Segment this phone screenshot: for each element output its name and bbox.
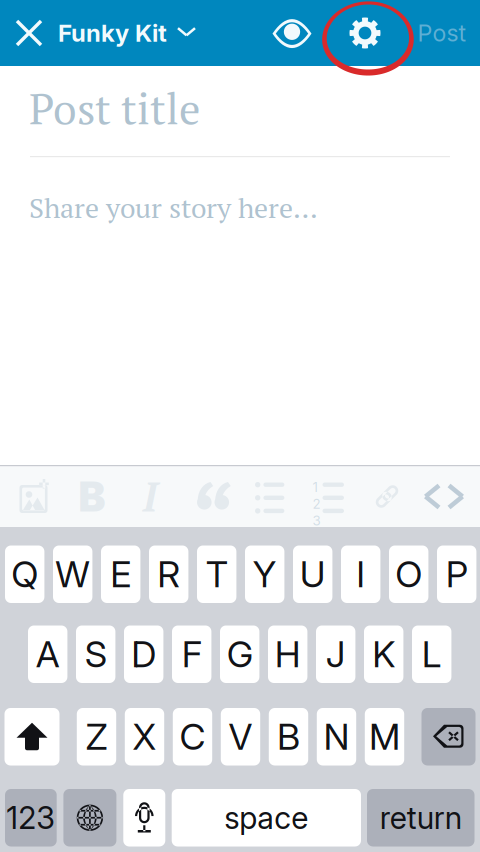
button[interactable]: Preview [266, 0, 318, 66]
staticText: Share your story here… [29, 189, 318, 226]
button[interactable]: V [221, 708, 260, 765]
button[interactable]: Settings [337, 0, 393, 66]
button[interactable]: Dictate [123, 789, 165, 846]
button[interactable]: Italic [122, 466, 178, 527]
staticText: H [275, 632, 301, 676]
button[interactable]: E [101, 545, 140, 603]
staticText: G [227, 632, 253, 676]
staticText: space [224, 799, 308, 836]
staticText: 2 [312, 496, 320, 512]
button[interactable]: Delete [421, 708, 475, 765]
button[interactable]: F [172, 625, 211, 683]
button[interactable]: N [317, 708, 356, 765]
button[interactable]: J [316, 625, 355, 683]
staticText: F [182, 632, 202, 676]
button[interactable]: 123 [5, 789, 57, 846]
button[interactable]: Bold [64, 466, 120, 527]
button[interactable]: Next keyboard [63, 789, 116, 846]
staticText: X [132, 715, 156, 759]
staticText: Post [417, 19, 466, 47]
staticText: 1 [312, 479, 317, 495]
staticText: K [372, 632, 395, 676]
staticText: M [369, 715, 400, 759]
staticText: Y [253, 552, 277, 596]
staticText: T [206, 552, 228, 596]
button[interactable]: Shift [4, 708, 59, 765]
staticText: Q [11, 552, 38, 596]
button[interactable]: Quote [186, 466, 242, 527]
staticText: 123 [6, 799, 55, 836]
staticText: I [142, 470, 157, 523]
button[interactable]: Q [5, 545, 44, 603]
button[interactable]: C [173, 708, 212, 765]
button[interactable]: A [28, 625, 67, 683]
staticText: B [277, 715, 300, 759]
button[interactable]: space [172, 789, 361, 846]
button[interactable]: R [149, 545, 188, 603]
button[interactable]: I [341, 545, 380, 603]
button[interactable]: O [389, 545, 428, 603]
button[interactable]: B [269, 708, 308, 765]
button[interactable]: D [124, 625, 163, 683]
button[interactable]: Code [416, 466, 472, 527]
button[interactable]: Close [5, 0, 53, 66]
button[interactable]: Funky Kit [58, 0, 195, 66]
button[interactable]: X [125, 708, 164, 765]
button[interactable]: Link [359, 466, 415, 527]
button[interactable]: return [367, 789, 474, 846]
button[interactable]: S [76, 625, 115, 683]
staticText: Z [85, 715, 107, 759]
staticText: J [326, 632, 346, 676]
button[interactable]: M [365, 708, 404, 765]
button[interactable]: Y [245, 545, 284, 603]
staticText: S [85, 632, 107, 676]
staticText: 3 [312, 512, 320, 529]
button[interactable]: Post [408, 0, 476, 66]
button[interactable]: T [197, 545, 236, 603]
button[interactable]: L [412, 625, 451, 683]
button[interactable]: Bullet list [242, 466, 298, 527]
button[interactable]: K [364, 625, 403, 683]
staticText: V [228, 715, 252, 759]
staticText: A [36, 632, 60, 676]
staticText: Funky Kit [58, 18, 167, 47]
staticText: I [356, 552, 365, 596]
staticText: U [300, 552, 326, 596]
button[interactable]: H [268, 625, 307, 683]
button[interactable]: P [437, 545, 476, 603]
staticText: D [131, 632, 156, 676]
button[interactable]: G [220, 625, 259, 683]
button[interactable]: Z [77, 708, 116, 765]
button[interactable]: W [53, 545, 92, 603]
staticText: Post title [29, 80, 200, 136]
staticText: L [422, 632, 442, 676]
staticText: return [380, 799, 462, 836]
staticText: B [78, 471, 105, 521]
staticText: C [179, 715, 205, 759]
button[interactable]: Numbered list [300, 466, 356, 527]
staticText: O [395, 552, 422, 596]
staticText: W [55, 552, 90, 596]
button[interactable]: U [293, 545, 332, 603]
button[interactable]: Insert media [7, 466, 63, 527]
staticText: R [157, 552, 180, 596]
staticText: N [323, 715, 349, 759]
staticText: P [446, 552, 468, 596]
staticText: E [110, 552, 131, 596]
